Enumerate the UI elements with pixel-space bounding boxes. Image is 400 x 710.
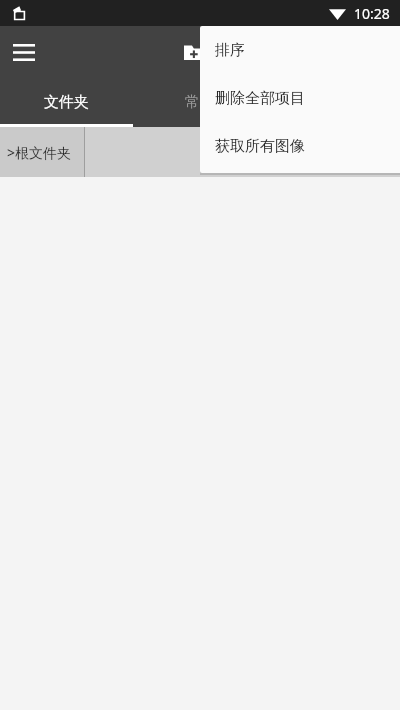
staticText: 排序 [215,41,245,60]
staticText: 获取所有图像 [215,137,305,156]
button[interactable]: 常用 [133,78,266,127]
button[interactable]: 排序 [200,26,400,74]
button[interactable]: >根文件夹 [0,127,84,177]
button[interactable]: Menu [0,28,48,76]
staticText: 文件夹 [44,93,89,112]
staticText: 删除全部项目 [215,89,305,108]
staticText: 常用 [185,93,215,112]
button[interactable] [266,78,400,127]
staticText: 10:28 [354,4,390,23]
button[interactable]: 获取所有图像 [200,122,400,170]
button[interactable]: New folder [169,28,217,76]
button[interactable]: 删除全部项目 [200,74,400,122]
button[interactable]: 文件夹 [0,78,133,127]
staticText: >根文件夹 [7,143,72,162]
